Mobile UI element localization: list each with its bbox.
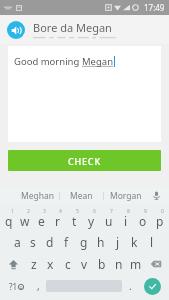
staticText: Meghan — [21, 190, 55, 202]
staticText: r — [55, 213, 60, 229]
button[interactable]: s — [25, 231, 41, 253]
button[interactable]: a — [9, 231, 25, 253]
button[interactable]: 9 — [134, 207, 151, 231]
staticText: e — [38, 213, 45, 229]
button[interactable]: h — [92, 231, 109, 253]
staticText: k — [131, 234, 138, 250]
staticText: , — [37, 279, 40, 293]
staticText: b — [98, 256, 106, 272]
staticText: 5 — [76, 208, 79, 215]
staticText: . — [129, 279, 132, 293]
button[interactable]: v — [76, 253, 93, 275]
button[interactable]: Enter — [138, 275, 167, 297]
staticText: Megan — [82, 55, 114, 68]
button[interactable]: Morgan — [104, 187, 147, 204]
staticText: o — [139, 213, 147, 229]
button[interactable]: c — [59, 253, 76, 275]
button[interactable]: 1 — [1, 207, 17, 231]
button[interactable]: 5 — [66, 207, 83, 231]
staticText: f — [64, 234, 69, 250]
staticText: q — [5, 213, 13, 229]
staticText: 1 — [11, 208, 14, 215]
button[interactable]: 0 — [151, 207, 168, 231]
button[interactable]: b — [93, 253, 110, 275]
staticText: 3 — [43, 208, 46, 215]
staticText: s — [30, 234, 36, 250]
staticText: l — [150, 234, 154, 250]
button[interactable]: d — [41, 231, 58, 253]
staticText: p — [156, 213, 164, 229]
staticText: a — [14, 234, 21, 250]
button[interactable]: j — [109, 231, 126, 253]
button[interactable]: Symbols and emoji — [2, 275, 30, 297]
staticText: 0 — [161, 208, 164, 215]
staticText: CHECK — [68, 155, 101, 167]
staticText: y — [88, 213, 95, 229]
button[interactable]: 4 — [49, 207, 66, 231]
staticText: 8 — [127, 208, 130, 215]
button[interactable]: 2 — [17, 207, 33, 231]
button[interactable]: l — [143, 231, 160, 253]
staticText: c — [65, 256, 71, 272]
staticText: g — [80, 234, 88, 250]
staticText: i — [124, 213, 128, 229]
staticText: t — [72, 213, 77, 229]
button[interactable]: f — [58, 231, 75, 253]
staticText: Morgan — [110, 190, 142, 202]
button[interactable]: m — [127, 253, 144, 275]
staticText: z — [31, 256, 37, 272]
staticText: Good morning — [14, 55, 82, 68]
button[interactable]: 6 — [83, 207, 100, 231]
staticText: v — [81, 256, 88, 272]
staticText: 4 — [59, 208, 62, 215]
button[interactable]: Play audio — [7, 21, 25, 39]
button[interactable]: k — [126, 231, 143, 253]
staticText: m — [130, 256, 142, 272]
staticText: n — [115, 256, 123, 272]
button[interactable]: Mean — [60, 187, 103, 204]
staticText: Bore da Megan — [33, 20, 112, 35]
staticText: j — [116, 234, 120, 250]
staticText: 6 — [93, 208, 96, 215]
staticText: Mean — [70, 190, 93, 202]
staticText: 7 — [110, 208, 113, 215]
staticText: u — [105, 213, 113, 229]
button[interactable]: g — [75, 231, 92, 253]
staticText: h — [97, 234, 105, 250]
button[interactable]: 8 — [117, 207, 134, 231]
staticText: 17:49 — [144, 2, 165, 13]
button[interactable]: Good morning — [8, 46, 161, 142]
staticText: ?1 — [9, 281, 18, 292]
button[interactable]: 3 — [33, 207, 49, 231]
button[interactable]: Shift — [1, 253, 25, 275]
staticText: d — [46, 234, 54, 250]
staticText: x — [47, 256, 54, 272]
button[interactable]: Backspace — [144, 253, 168, 275]
button[interactable]: 7 — [100, 207, 117, 231]
button[interactable]: . — [122, 275, 138, 297]
staticText: 2 — [27, 208, 30, 215]
button[interactable]: n — [110, 253, 127, 275]
staticText: w — [20, 213, 30, 229]
button[interactable]: x — [42, 253, 59, 275]
button[interactable]: z — [25, 253, 42, 275]
button[interactable]: , — [30, 275, 46, 297]
staticText: 9 — [144, 208, 147, 215]
button[interactable]: Meghan — [16, 187, 59, 204]
button[interactable]: Voice input — [150, 189, 163, 202]
button[interactable]: CHECK — [8, 150, 161, 171]
